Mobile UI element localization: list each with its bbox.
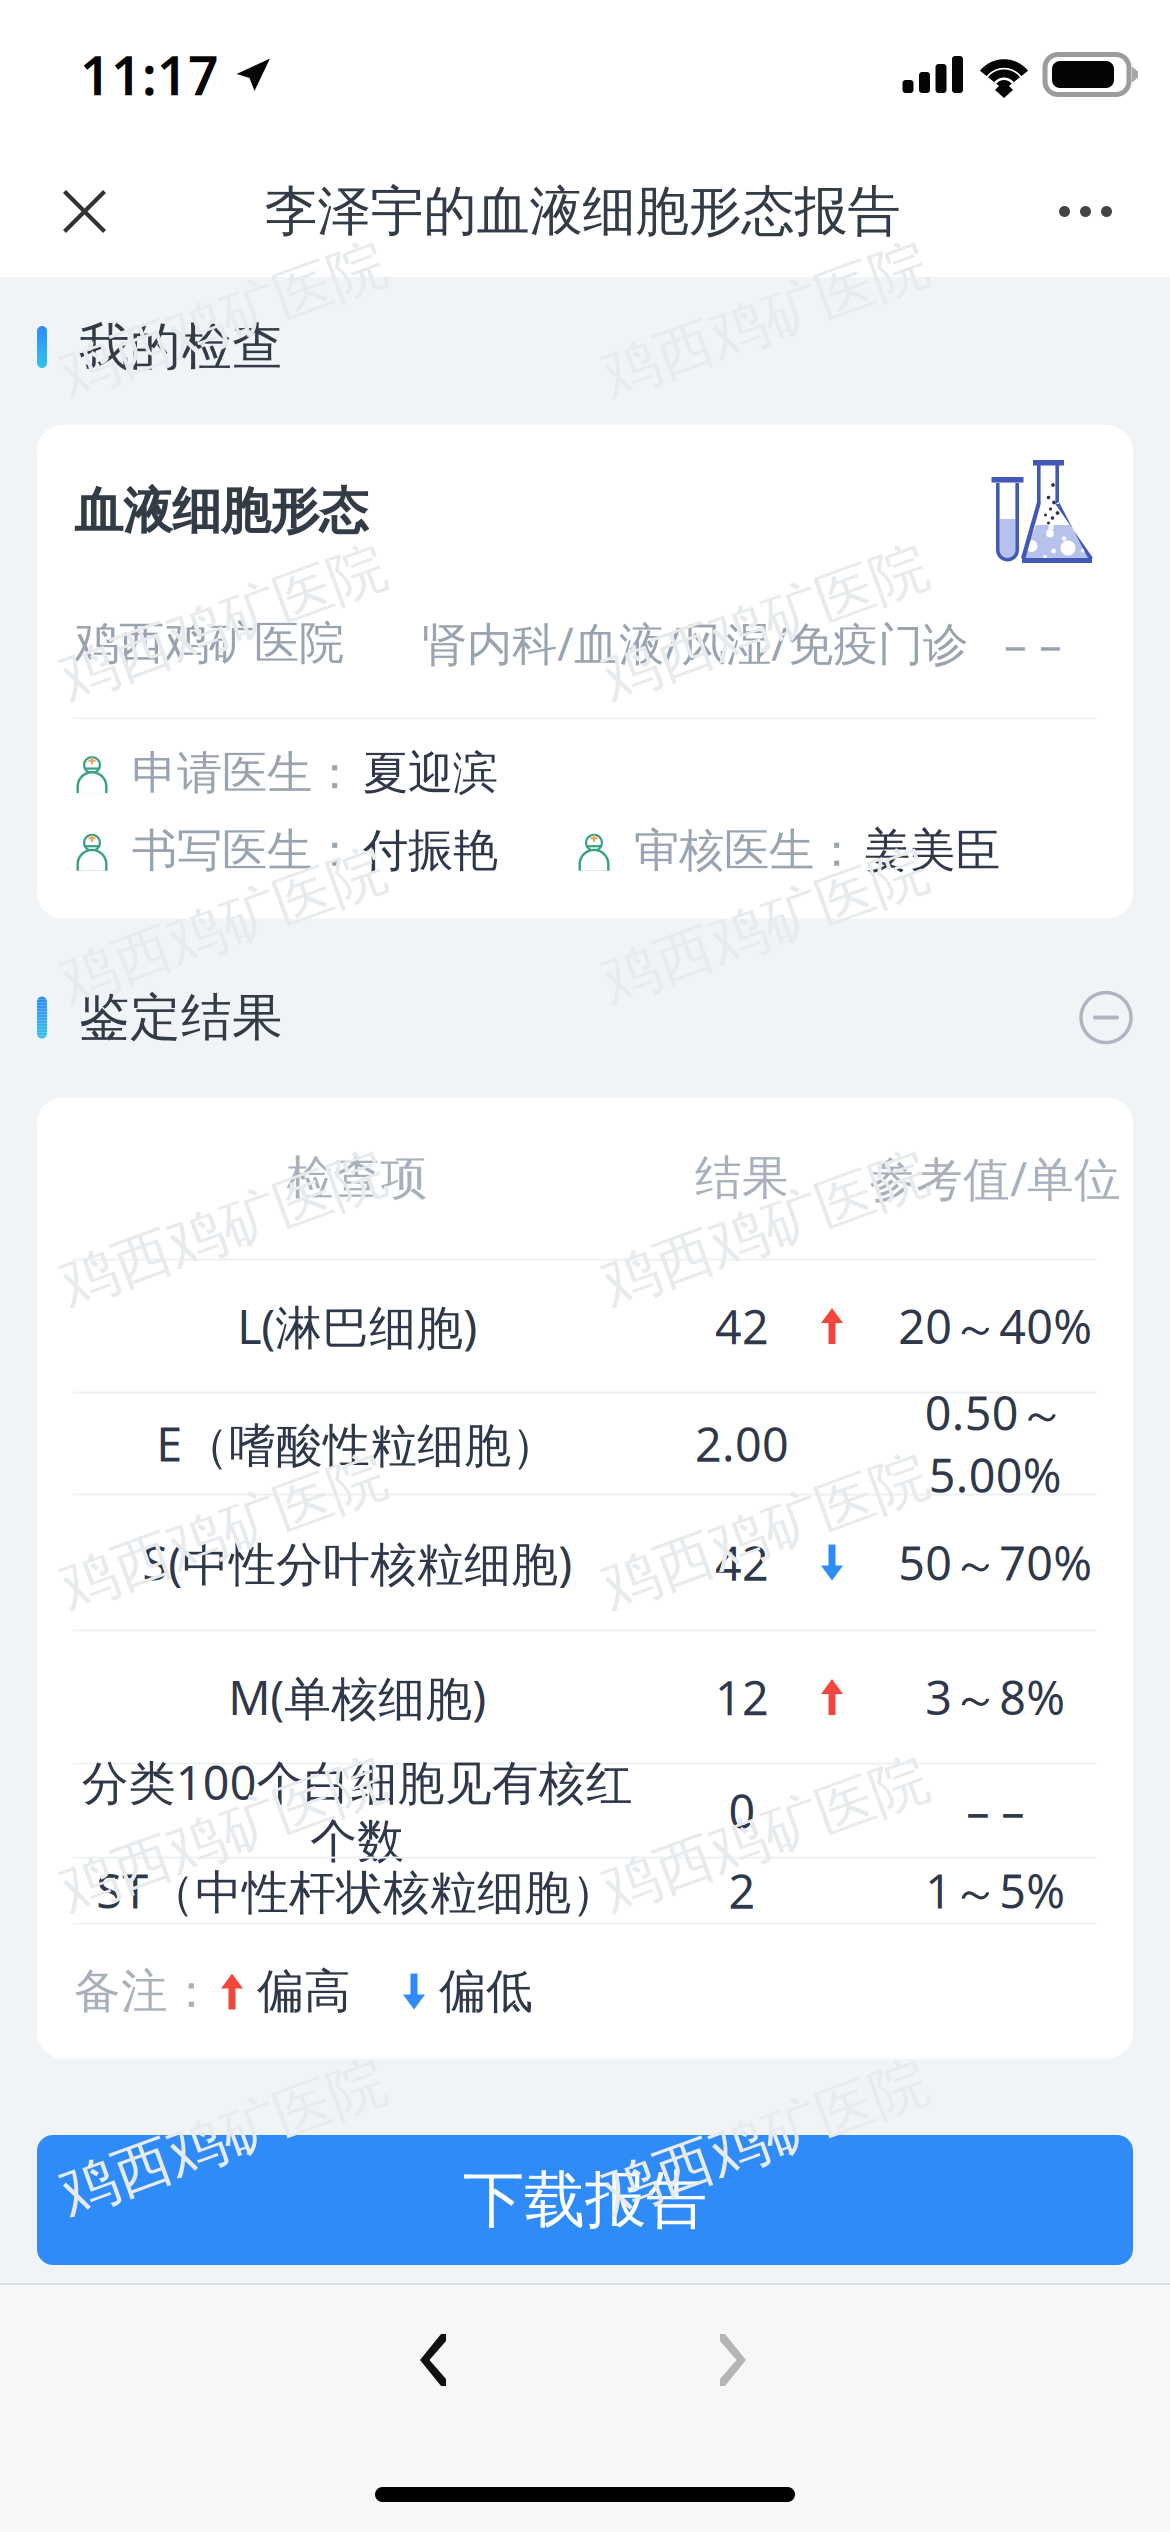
staticText: 鸡西鸡矿医院	[52, 1800, 394, 1870]
staticText: 42	[715, 1532, 769, 1594]
button[interactable]: 更多	[1019, 146, 1170, 277]
staticText: – –	[1004, 613, 1062, 673]
staticText: 50～70%	[898, 1531, 1092, 1594]
staticText: 鉴定结果	[79, 986, 283, 1049]
staticText: 鸡西鸡矿医院	[594, 1800, 936, 1870]
staticText: 检查项	[286, 1149, 427, 1207]
staticText: 夏迎滨	[363, 745, 498, 801]
staticText: 鸡西鸡矿医院	[52, 285, 394, 355]
staticText: 鸡西鸡矿医院	[52, 588, 394, 658]
staticText: 备注：	[74, 1963, 215, 2020]
staticText: 鸡西鸡矿医院	[52, 1497, 394, 1567]
staticText: 0.50～5.00%	[924, 1381, 1065, 1506]
button[interactable]: 后退	[358, 2285, 508, 2435]
staticText: 付振艳	[363, 823, 498, 879]
staticText: 1～5%	[925, 1859, 1065, 1922]
staticText: 姜美臣	[865, 823, 1000, 879]
staticText: 书写医生：	[132, 823, 357, 879]
button[interactable]: 折叠	[1058, 970, 1154, 1066]
staticText: 11:17	[80, 39, 219, 110]
staticText: 分类100个白细胞见有核红个数	[81, 1751, 632, 1870]
button[interactable]: 前进	[658, 2285, 808, 2435]
staticText: 鸡西鸡矿医院	[594, 588, 936, 658]
staticText: 参考值/单位	[869, 1147, 1121, 1209]
staticText: 鸡西鸡矿医院	[52, 2103, 394, 2173]
staticText: 结果	[695, 1149, 789, 1207]
staticText: S(中性分叶核粒细胞)	[142, 1531, 572, 1594]
staticText: 审核医生：	[634, 823, 859, 879]
staticText: – –	[966, 1780, 1024, 1842]
staticText: 偏低	[439, 1963, 533, 2020]
staticText: 下载报告	[463, 2162, 707, 2238]
staticText: E（嗜酸性粒细胞）	[156, 1412, 558, 1475]
staticText: L(淋巴细胞)	[237, 1295, 477, 1357]
staticText: 2	[728, 1860, 755, 1922]
staticText: 申请医生：	[132, 745, 357, 801]
staticText: 3～8%	[925, 1666, 1065, 1728]
staticText: 鸡西鸡矿医院	[594, 2103, 936, 2173]
staticText: 血液细胞形态	[74, 481, 368, 542]
staticText: ST（中性杆状核粒细胞）	[96, 1859, 618, 1922]
staticText: 鸡西鸡矿医院	[594, 1194, 936, 1264]
staticText: 12	[715, 1666, 769, 1728]
button[interactable]: 关闭	[0, 146, 146, 277]
button[interactable]: 下载报告	[0, 2135, 1170, 2265]
staticText: 鸡西鸡矿医院	[52, 1194, 394, 1264]
staticText: 鸡西鸡矿医院	[52, 891, 394, 961]
staticText: M(单核细胞)	[228, 1666, 486, 1728]
staticText: 我的检查	[79, 316, 283, 378]
staticText: 鸡西鸡矿医院	[594, 1497, 936, 1567]
staticText: 李泽宇的血液细胞形态报告	[264, 179, 900, 244]
staticText: 偏高	[257, 1963, 351, 2020]
staticText: 鸡西鸡矿医院	[74, 615, 344, 671]
staticText: 鸡西鸡矿医院	[594, 285, 936, 355]
staticText: 42	[715, 1295, 769, 1357]
staticText: 2.00	[695, 1413, 789, 1475]
staticText: 0	[728, 1780, 755, 1842]
staticText: 鸡西鸡矿医院	[594, 891, 936, 961]
staticText: 20～40%	[898, 1295, 1092, 1357]
staticText: 肾内科/血液/风湿/免疫门诊	[422, 613, 968, 673]
